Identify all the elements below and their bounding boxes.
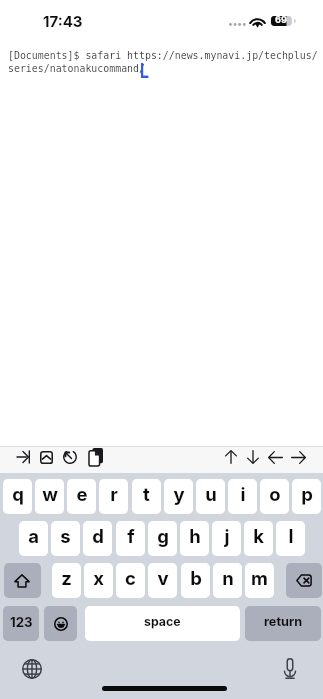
button[interactable]: Tab (12, 446, 35, 468)
staticText: d (92, 525, 104, 547)
button[interactable]: z (52, 563, 81, 598)
staticText: n (222, 567, 234, 589)
staticText: o (269, 483, 281, 505)
staticText: v (157, 567, 169, 589)
button[interactable]: q (3, 479, 32, 514)
staticText: j (224, 525, 230, 547)
button[interactable]: h (180, 521, 209, 556)
staticText: g (157, 525, 169, 547)
staticText: return (264, 614, 303, 629)
staticText: z (61, 567, 72, 589)
button[interactable]: g (148, 521, 177, 556)
staticText: u (205, 483, 217, 505)
button[interactable]: u (196, 479, 225, 514)
staticText: a (28, 525, 39, 547)
button[interactable]: Up (220, 445, 242, 469)
staticText: x (93, 567, 104, 589)
button[interactable]: space (85, 606, 240, 641)
staticText: m (251, 567, 268, 589)
button[interactable]: c (116, 563, 145, 598)
staticText: h (189, 525, 201, 547)
button[interactable]: m (245, 563, 274, 598)
staticText: y (173, 483, 185, 505)
staticText: space (144, 614, 181, 629)
button[interactable]: k (244, 521, 273, 556)
button[interactable]: p (292, 479, 321, 514)
button[interactable]: e (67, 479, 96, 514)
button[interactable]: Dictation (275, 653, 305, 683)
staticText: [Documents]$ safari https://news.mynavi.… (8, 50, 318, 62)
button[interactable]: t (132, 479, 161, 514)
button[interactable]: l (276, 521, 305, 556)
button[interactable]: w (35, 479, 64, 514)
button[interactable]: Backspace (286, 563, 322, 598)
button[interactable]: Control (35, 446, 58, 469)
button[interactable]: r (99, 479, 128, 514)
button[interactable]: i (228, 479, 257, 514)
staticText: p (301, 483, 313, 505)
staticText: c (125, 567, 136, 589)
button[interactable]: Shift (4, 563, 41, 598)
button[interactable]: n (213, 563, 242, 598)
staticText: e (76, 483, 88, 505)
button[interactable]: o (260, 479, 289, 514)
staticText: t (143, 483, 150, 505)
button[interactable]: Change keyboard (17, 654, 47, 684)
button[interactable]: x (84, 563, 113, 598)
staticText: f (127, 525, 135, 547)
staticText: series/natonakucommand/ (8, 63, 145, 75)
button[interactable]: Left (263, 446, 288, 469)
staticText: r (110, 483, 118, 505)
button[interactable]: Paste (84, 443, 108, 470)
button[interactable]: f (116, 521, 145, 556)
button[interactable]: y (164, 479, 193, 514)
button[interactable]: return (245, 606, 321, 641)
staticText: w (42, 483, 58, 505)
staticText: k (253, 525, 264, 547)
button[interactable]: 123 (3, 606, 39, 641)
staticText: 69 (275, 14, 287, 25)
button[interactable]: d (83, 521, 112, 556)
button[interactable]: s (51, 521, 80, 556)
button[interactable]: Right (286, 446, 311, 469)
staticText: l (288, 525, 294, 547)
button[interactable]: j (212, 521, 241, 556)
staticText: b (190, 567, 202, 589)
staticText: s (60, 525, 71, 547)
staticText: q (12, 483, 24, 505)
button[interactable]: Emoji (44, 606, 77, 641)
staticText: 17:43 (43, 12, 83, 30)
button[interactable]: v (148, 563, 177, 598)
button[interactable]: Undo (58, 445, 82, 469)
staticText: 123 (10, 614, 33, 630)
button[interactable]: b (181, 563, 210, 598)
button[interactable]: a (19, 521, 48, 556)
button[interactable]: Down (242, 445, 264, 469)
staticText: i (240, 483, 246, 505)
